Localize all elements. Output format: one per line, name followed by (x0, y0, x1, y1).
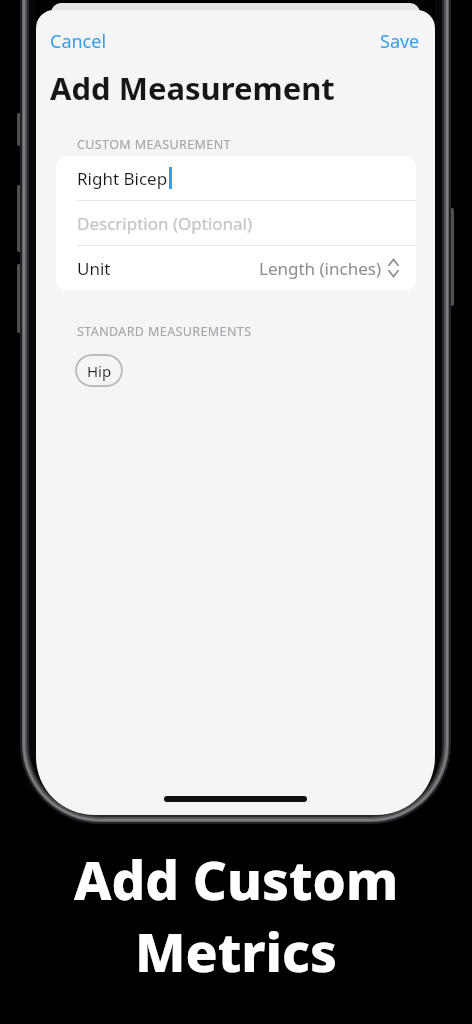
button[interactable]: Unit (56, 246, 416, 290)
staticText: STANDARD MEASUREMENTS (77, 323, 252, 340)
button[interactable]: Save (380, 29, 420, 54)
staticText: Length (inches) (259, 257, 382, 280)
staticText: Description (Optional) (77, 212, 253, 235)
staticText: Metrics (135, 915, 337, 987)
staticText: Add Custom (74, 843, 399, 915)
staticText: Right Bicep (77, 167, 168, 190)
staticText: Cancel (50, 29, 107, 54)
staticText: Add Measurement (50, 67, 335, 109)
button[interactable]: Hip (75, 354, 123, 387)
button[interactable]: Cancel (50, 29, 107, 54)
button[interactable]: Right Bicep (56, 156, 416, 200)
staticText: Unit (77, 257, 111, 280)
button[interactable]: Description (Optional) (56, 201, 416, 245)
staticText: Save (380, 29, 420, 54)
staticText: CUSTOM MEASUREMENT (77, 136, 231, 153)
staticText: Hip (87, 361, 112, 381)
